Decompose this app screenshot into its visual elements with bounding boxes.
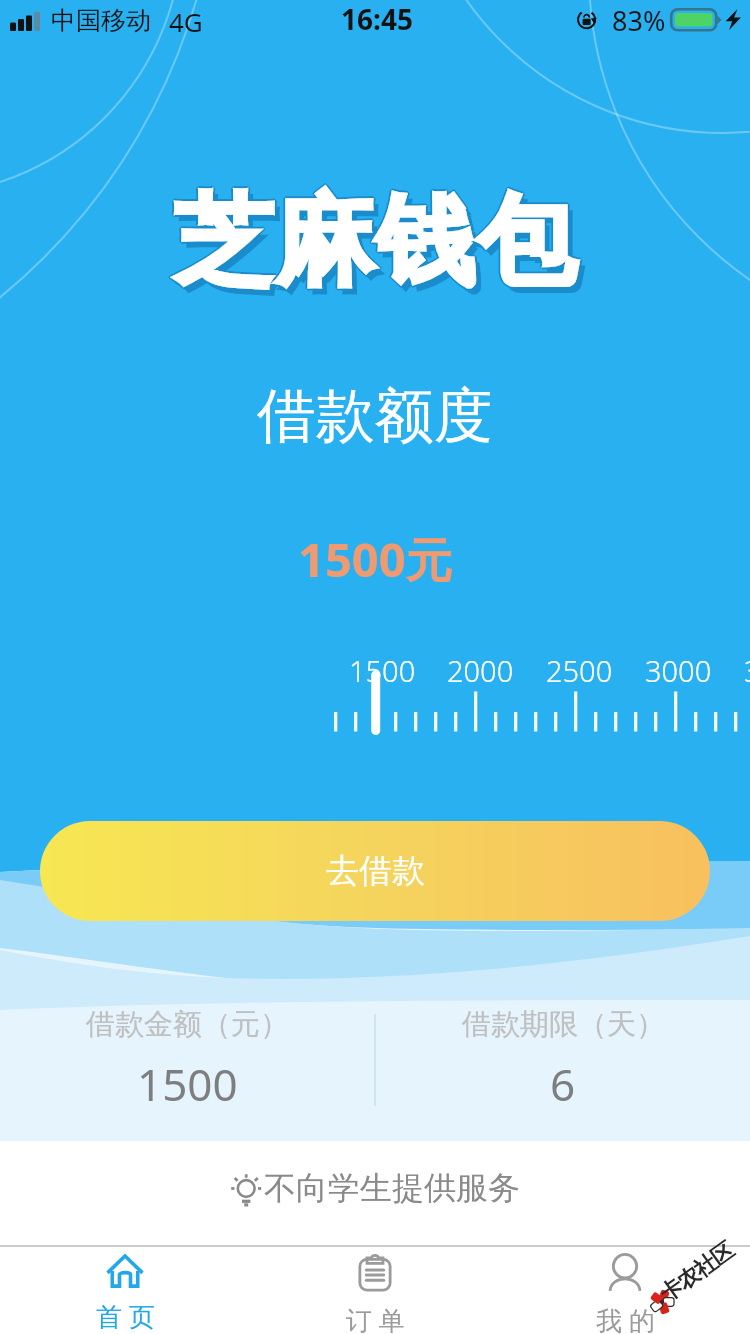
button[interactable]: Profile — [500, 1247, 750, 1334]
staticText: 卡农社区 — [655, 1236, 739, 1308]
staticText: 83% — [612, 2, 666, 39]
staticText: 芝麻钱包 — [174, 179, 578, 304]
staticText: 不向学生提供服务 — [264, 1168, 520, 1208]
staticText: 去借款 — [326, 850, 425, 892]
staticText: 1500 — [349, 651, 416, 690]
button[interactable]: Home — [0, 1247, 250, 1334]
staticText: 1500 — [137, 1054, 238, 1114]
other: Profile — [607, 1254, 643, 1292]
staticText: 6 — [550, 1054, 576, 1114]
staticText: 订 单 — [346, 1302, 405, 1334]
staticText: 16:45 — [341, 0, 413, 38]
staticText: 2500 — [546, 651, 613, 690]
staticText: 芝麻钱包 — [173, 180, 577, 305]
staticText: 芝麻钱包 — [174, 181, 578, 306]
other: Home — [106, 1254, 144, 1288]
staticText: 借款金额（元） — [86, 1006, 289, 1043]
staticText: 芝麻钱包 — [172, 181, 576, 306]
staticText: 芝麻钱包 — [173, 178, 577, 303]
button[interactable]: 去借款 — [40, 821, 710, 921]
staticText: 芝麻钱包 — [172, 179, 576, 304]
staticText: 4G — [169, 4, 203, 39]
staticText: 芝麻钱包 — [173, 182, 577, 307]
staticText: 借款期限（天） — [462, 1006, 665, 1043]
staticText: 芝麻钱包 — [178, 186, 582, 311]
staticText: 3500 — [744, 651, 750, 690]
staticText: 芝麻钱包 — [171, 180, 575, 305]
staticText: 2000 — [447, 651, 514, 690]
button[interactable]: Orders — [250, 1247, 500, 1334]
other: Orders — [358, 1254, 392, 1292]
staticText: 1500元 — [298, 527, 453, 591]
staticText: 芝麻钱包 — [175, 180, 579, 305]
other: Rotation lock — [576, 9, 600, 31]
staticText: 首 页 — [96, 1298, 155, 1334]
staticText: 借款额度 — [257, 379, 493, 453]
staticText: 3000 — [645, 651, 712, 690]
staticText: 我 的 — [596, 1302, 655, 1334]
staticText: 中国移动 — [51, 5, 151, 36]
